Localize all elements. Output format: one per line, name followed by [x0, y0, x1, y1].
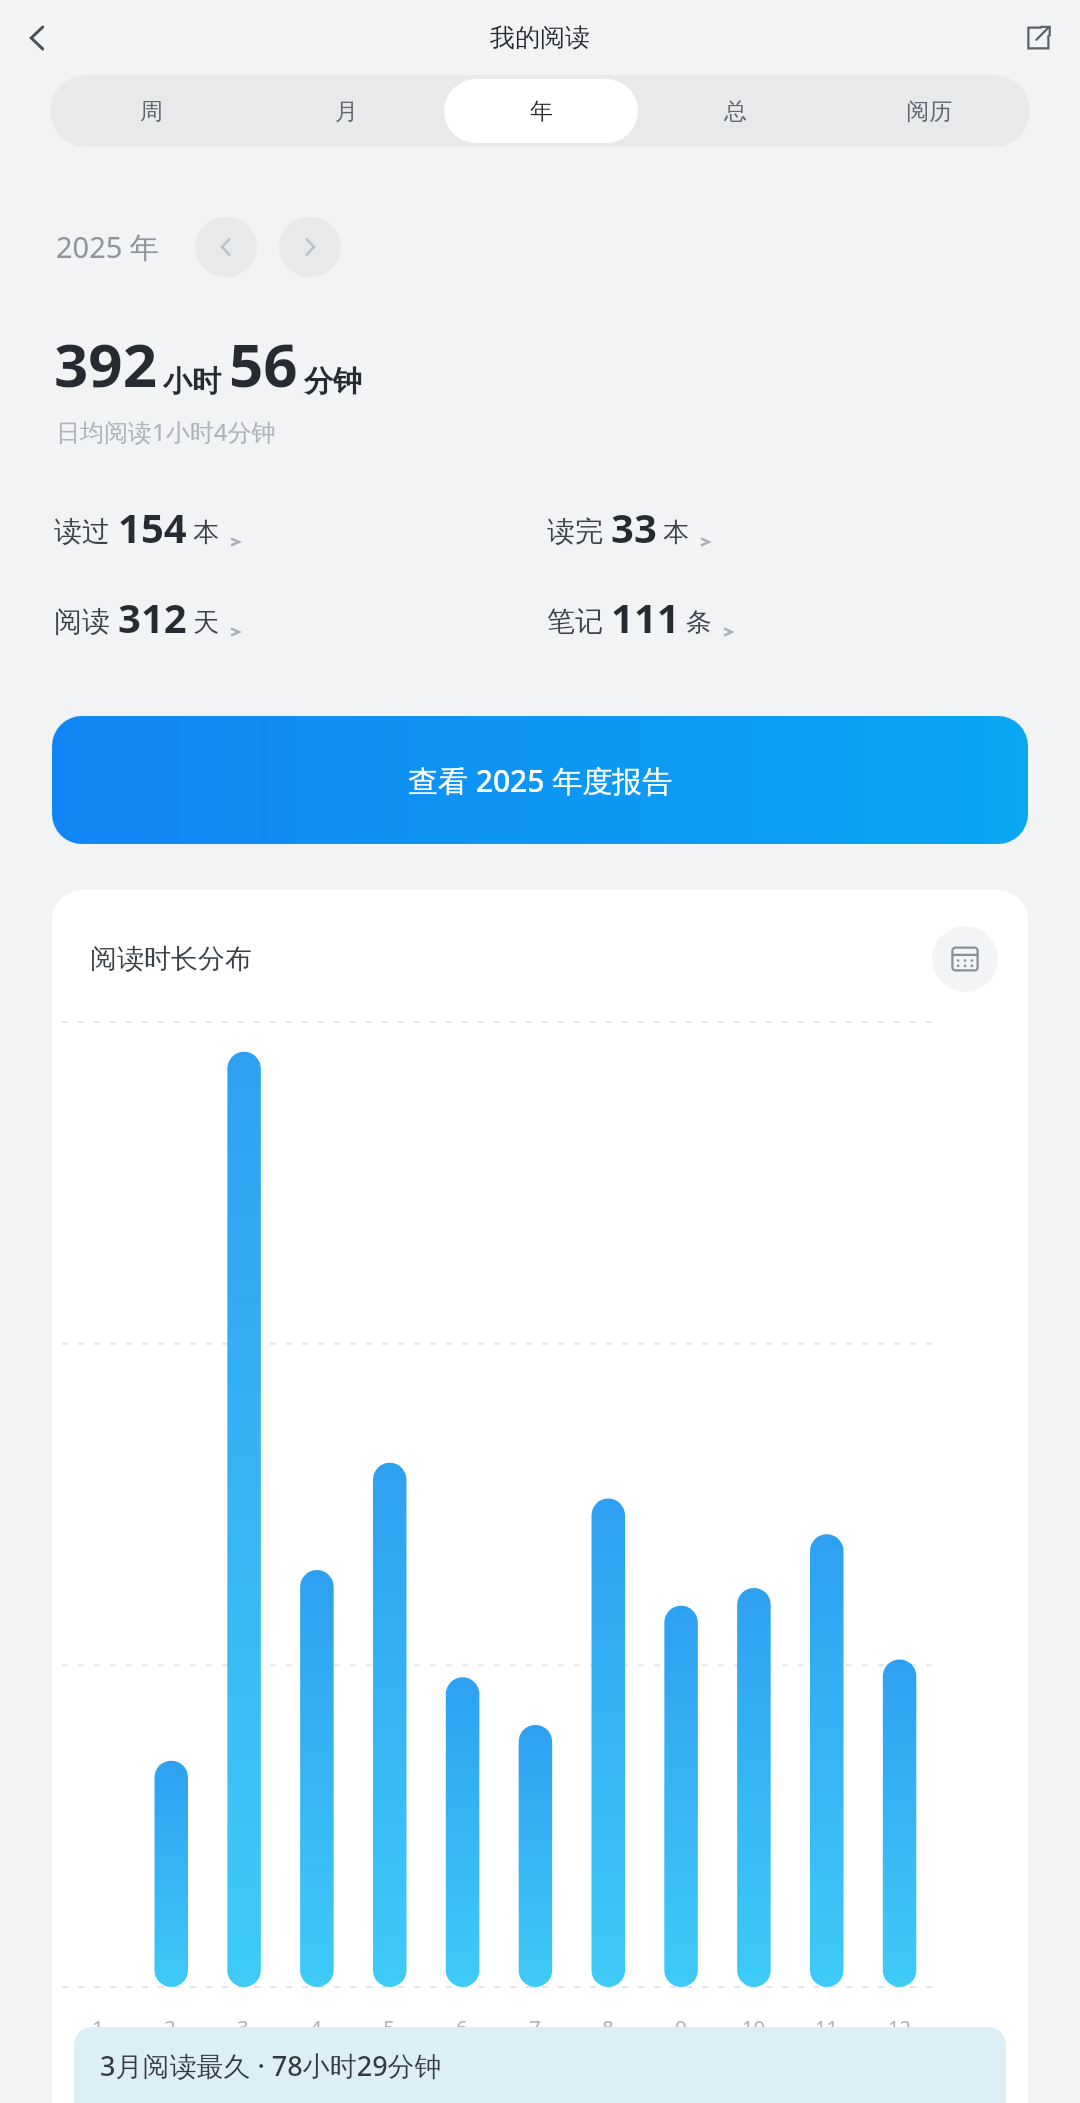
staticText: 10: [742, 2014, 765, 2041]
staticText: 312: [118, 590, 187, 644]
staticText: 阅读: [54, 604, 110, 639]
button[interactable]: 读完: [547, 500, 1040, 554]
button[interactable]: 阅读: [54, 590, 547, 644]
staticText: 周: [140, 97, 163, 126]
staticText: 查看 2025 年度报告: [408, 760, 673, 801]
button[interactable]: 查看 2025 年度报告: [52, 716, 1028, 844]
staticText: 5: [383, 2014, 395, 2041]
button[interactable]: 总: [638, 79, 832, 143]
staticText: 读过: [54, 514, 110, 549]
button[interactable]: 笔记: [547, 590, 1040, 644]
button[interactable]: 阅历: [832, 79, 1026, 143]
staticText: 12: [888, 2014, 911, 2041]
staticText: 分钟: [304, 363, 362, 400]
staticText: 本: [193, 516, 219, 549]
button[interactable]: Previous year: [195, 217, 257, 277]
button[interactable]: 3月阅读最久 · 78小时29分钟: [74, 2027, 1006, 2103]
staticText: 56: [229, 323, 298, 405]
staticText: 天: [193, 606, 219, 639]
button[interactable]: 月: [249, 79, 444, 143]
staticText: 1: [92, 2014, 104, 2041]
staticText: 年: [530, 97, 553, 126]
staticText: 阅历: [906, 97, 952, 126]
staticText: 392: [54, 323, 157, 405]
staticText: 7: [529, 2014, 541, 2041]
staticText: 笔记: [547, 604, 603, 639]
button[interactable]: Calendar view: [932, 926, 998, 992]
staticText: 小时: [163, 363, 221, 400]
staticText: 条: [686, 606, 712, 639]
staticText: 11: [815, 2014, 838, 2041]
staticText: 阅读时长分布: [90, 942, 252, 976]
staticText: 2025 年: [56, 227, 159, 267]
button[interactable]: Share: [1010, 10, 1066, 66]
staticText: 读完: [547, 514, 603, 549]
button[interactable]: 读过: [54, 500, 547, 554]
staticText: 6: [456, 2014, 468, 2041]
staticText: 月: [335, 97, 358, 126]
staticText: 3: [237, 2014, 249, 2041]
staticText: 33: [611, 500, 657, 554]
staticText: 总: [724, 97, 747, 126]
staticText: 8: [602, 2014, 614, 2041]
staticText: 我的阅读: [490, 22, 590, 53]
staticText: 111: [611, 590, 680, 644]
staticText: 154: [118, 500, 187, 554]
staticText: 3月阅读最久 · 78小时29分钟: [100, 2047, 442, 2084]
button[interactable]: 周: [54, 79, 249, 143]
button[interactable]: Back: [10, 10, 66, 66]
button[interactable]: 年: [444, 79, 638, 143]
staticText: 4: [310, 2014, 322, 2041]
staticText: 9: [675, 2014, 687, 2041]
button[interactable]: Next year: [279, 217, 341, 277]
staticText: 2: [164, 2014, 176, 2041]
staticText: 本: [663, 516, 689, 549]
staticText: 日均阅读1小时4分钟: [56, 415, 276, 448]
